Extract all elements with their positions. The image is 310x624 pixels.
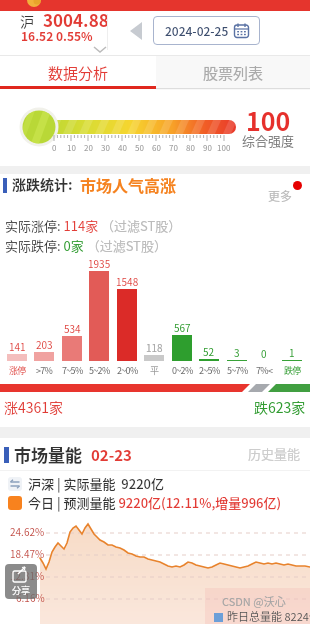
staticText: 20 <box>84 142 93 154</box>
staticText: 市场人气高涨 <box>80 173 177 196</box>
staticText: 2~5% <box>199 364 220 377</box>
staticText: 分享 <box>12 584 31 597</box>
staticText: 0 <box>52 142 57 154</box>
staticText: 30 <box>101 142 110 154</box>
staticText: 更多 <box>268 187 293 204</box>
staticText: 跌停 <box>284 364 301 377</box>
staticText: 40 <box>118 142 127 154</box>
staticText: 3004.88 <box>43 7 109 32</box>
staticText: 涨跌统计: <box>12 174 73 194</box>
staticText: 24.62% <box>10 524 45 538</box>
staticText: 0~2% <box>172 364 193 377</box>
staticText: 综合强度 <box>242 131 295 150</box>
staticText: 涨停 <box>9 364 26 377</box>
staticText: 市场量能 <box>14 442 82 467</box>
staticText: 2~0% <box>117 364 138 377</box>
button[interactable]: 股票列表 <box>156 56 310 90</box>
staticText: 数据分析 <box>48 62 109 84</box>
staticText: 16.52 0.55% <box>21 27 93 44</box>
staticText: 50 <box>135 142 144 154</box>
staticText: 118 <box>146 340 163 354</box>
button[interactable] <box>126 18 146 44</box>
staticText: 100 <box>246 102 291 138</box>
button[interactable]: 更多 <box>268 186 302 204</box>
staticText: 1548 <box>116 274 139 288</box>
staticText: 实际涨停: 114家 （过滤ST股） <box>5 216 182 235</box>
staticText: 今日 | 预测量能 9220亿(12.11%,增量996亿) <box>28 493 282 512</box>
staticText: 跌623家 <box>254 397 306 417</box>
staticText: 历史量能 <box>248 444 301 462</box>
staticText: 141 <box>9 339 26 353</box>
staticText: 5~7% <box>227 364 248 377</box>
staticText: 203 <box>36 337 53 351</box>
staticText: 567 <box>174 320 191 334</box>
staticText: 实际跌停: 0家 （过滤ST股） <box>5 236 167 255</box>
staticText: 52 <box>203 344 215 358</box>
staticText: 涨4361家 <box>4 397 64 417</box>
staticText: 5~2% <box>89 364 110 377</box>
staticText: 3 <box>234 345 240 359</box>
staticText: 12.31% <box>10 568 45 582</box>
staticText: 02-23 <box>91 444 132 466</box>
staticText: >7% <box>36 364 53 377</box>
staticText: 股票列表 <box>203 62 264 84</box>
button[interactable]: 数据分析 <box>0 56 156 90</box>
staticText: 80 <box>186 142 195 154</box>
staticText: 昨日总量能 8224亿 <box>227 608 310 624</box>
staticText: 70 <box>169 142 178 154</box>
staticText: 平 <box>150 364 159 377</box>
staticText: 7%< <box>256 364 273 377</box>
staticText: 10 <box>67 142 76 154</box>
staticText: 6.16% <box>16 590 45 604</box>
staticText: 18.47% <box>10 546 45 560</box>
button[interactable]: 分享 <box>5 564 37 599</box>
staticText: 100 <box>217 142 231 154</box>
staticText: 1935 <box>88 256 111 270</box>
staticText: 60 <box>152 142 161 154</box>
staticText: 沪深 | 实际量能 9220亿 <box>28 474 164 493</box>
staticText: 1 <box>289 345 295 359</box>
staticText: 7~5% <box>62 364 83 377</box>
staticText: 沪 <box>20 11 34 31</box>
staticText: 90 <box>203 142 212 154</box>
staticText: 2024-02-25 <box>165 22 229 39</box>
staticText: CSDN @沃心 <box>222 593 286 609</box>
staticText: 534 <box>64 321 81 335</box>
button[interactable]: 历史量能 <box>248 444 306 462</box>
staticText: 0 <box>261 346 267 360</box>
button[interactable]: 2024-02-25 <box>153 16 260 45</box>
